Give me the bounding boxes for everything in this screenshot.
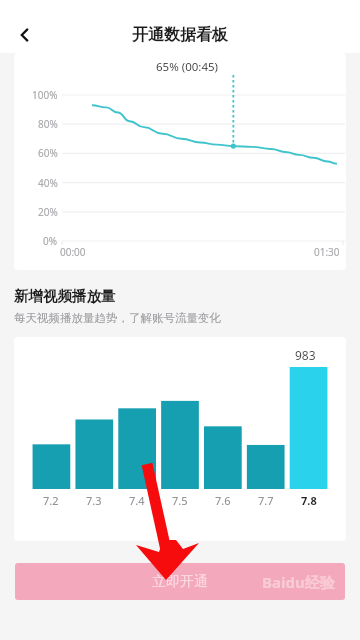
staticText: 7.7 <box>258 493 274 508</box>
staticText: 20% <box>38 205 58 219</box>
staticText: 7.3 <box>86 493 102 508</box>
staticText: 40% <box>38 176 58 190</box>
staticText: 65% (00:45) <box>156 59 218 75</box>
staticText: 7.4 <box>129 493 145 508</box>
button[interactable]: Back <box>6 16 44 53</box>
staticText: 新增视频播放量 <box>14 287 116 305</box>
staticText: 00:00 <box>60 245 86 259</box>
staticText: 60% <box>38 146 58 160</box>
staticText: 7.5 <box>172 493 188 508</box>
staticText: 80% <box>38 117 58 131</box>
staticText: 01:30 <box>314 245 340 259</box>
staticText: 立即开通 <box>152 573 208 591</box>
staticText: 每天视频播放量趋势，了解账号流量变化 <box>14 311 221 325</box>
staticText: 7.2 <box>43 493 59 508</box>
staticText: Baidu经验 <box>262 572 335 592</box>
staticText: 7.8 <box>301 493 317 508</box>
staticText: 0% <box>43 234 58 248</box>
staticText: 开通数据看板 <box>132 25 228 45</box>
button[interactable]: 立即开通 <box>15 563 345 600</box>
staticText: 100% <box>32 88 58 102</box>
staticText: 983 <box>295 347 316 363</box>
staticText: 7.6 <box>215 493 231 508</box>
